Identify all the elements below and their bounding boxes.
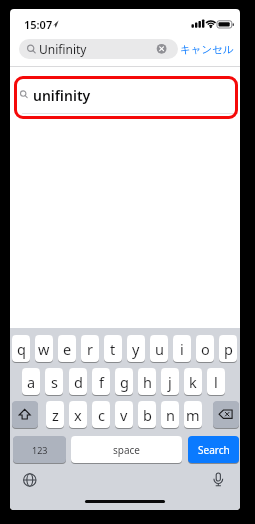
staticText: d — [74, 372, 83, 392]
button[interactable] — [213, 401, 239, 428]
staticText: j — [168, 372, 172, 392]
staticText: a — [27, 372, 36, 392]
button[interactable]: o — [196, 335, 214, 362]
staticText: m — [186, 405, 200, 425]
button[interactable]: m — [184, 401, 202, 428]
staticText: キャンセル — [180, 43, 234, 56]
button[interactable]: l — [207, 368, 225, 395]
button[interactable]: u — [150, 335, 168, 362]
button[interactable]: r — [81, 335, 99, 362]
button[interactable] — [18, 468, 42, 492]
staticText: z — [52, 405, 59, 425]
staticText: p — [224, 339, 233, 359]
button[interactable]: q — [12, 335, 30, 362]
staticText: y — [132, 339, 140, 359]
staticText: 15:07 — [24, 17, 53, 32]
staticText: Unifinity — [39, 41, 87, 57]
button[interactable]: p — [219, 335, 237, 362]
button[interactable]: 123 — [13, 436, 66, 463]
staticText: c — [98, 405, 105, 425]
staticText: i — [180, 339, 184, 359]
button[interactable] — [12, 401, 38, 428]
staticText: 123 — [32, 444, 48, 456]
button[interactable] — [14, 76, 238, 119]
staticText: v — [120, 405, 128, 425]
staticText: r — [87, 339, 93, 359]
staticText: s — [51, 372, 58, 392]
staticText: n — [166, 405, 175, 425]
button[interactable]: f — [92, 368, 110, 395]
button[interactable]: c — [92, 401, 110, 428]
button[interactable]: b — [138, 401, 156, 428]
button[interactable]: y — [127, 335, 145, 362]
button[interactable]: n — [161, 401, 179, 428]
button[interactable]: j — [161, 368, 179, 395]
staticText: u — [155, 339, 164, 359]
staticText: l — [214, 372, 218, 392]
button[interactable]: k — [184, 368, 202, 395]
button[interactable]: Search — [188, 436, 239, 463]
button[interactable]: h — [138, 368, 156, 395]
button[interactable]: d — [69, 368, 87, 395]
staticText: g — [120, 372, 129, 392]
button[interactable]: i — [173, 335, 191, 362]
button[interactable]: g — [115, 368, 133, 395]
staticText: w — [38, 339, 50, 359]
staticText: x — [74, 405, 82, 425]
staticText: o — [201, 339, 210, 359]
button[interactable] — [19, 39, 178, 59]
staticText: e — [63, 339, 72, 359]
staticText: q — [17, 339, 26, 359]
button[interactable]: e — [58, 335, 76, 362]
button[interactable]: z — [46, 401, 64, 428]
button[interactable]: キャンセル — [180, 40, 240, 58]
staticText: k — [189, 372, 197, 392]
button[interactable] — [206, 468, 230, 492]
staticText: f — [99, 372, 104, 392]
button[interactable]: space — [71, 436, 182, 463]
staticText: t — [110, 339, 116, 359]
button[interactable]: t — [104, 335, 122, 362]
staticText: h — [143, 372, 152, 392]
button[interactable]: s — [45, 368, 63, 395]
staticText: Search — [198, 443, 230, 457]
staticText: space — [113, 443, 140, 457]
button[interactable]: v — [115, 401, 133, 428]
button[interactable]: x — [69, 401, 87, 428]
button[interactable]: a — [22, 368, 40, 395]
staticText: b — [143, 405, 152, 425]
button[interactable]: w — [35, 335, 53, 362]
staticText: unifinity — [33, 86, 91, 104]
